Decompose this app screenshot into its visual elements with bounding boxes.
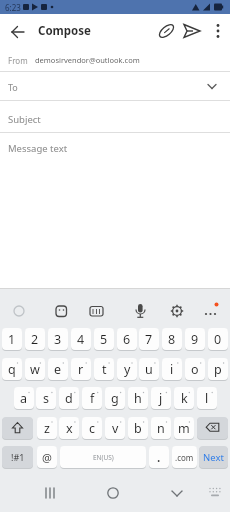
button[interactable]: Next	[199, 446, 228, 468]
button[interactable]: q	[2, 358, 22, 380]
button[interactable]: s	[36, 387, 56, 409]
button[interactable]	[157, 480, 197, 506]
staticText: 6	[123, 331, 131, 348]
button[interactable]: t	[94, 358, 114, 380]
button[interactable]: 2	[25, 328, 45, 350]
staticText: z	[44, 420, 50, 437]
staticText: m	[178, 420, 190, 437]
button[interactable]: e	[48, 358, 68, 380]
staticText: 3	[54, 331, 62, 348]
button[interactable]: v	[105, 417, 125, 439]
staticText: .com	[175, 452, 194, 463]
button[interactable]: i	[162, 358, 182, 380]
staticText: .	[157, 449, 161, 465]
button[interactable]	[6, 20, 30, 44]
button[interactable]	[93, 480, 133, 506]
button[interactable]: 8	[162, 328, 182, 350]
staticText: o	[191, 361, 199, 378]
button[interactable]: 7	[139, 328, 159, 350]
staticText: Message text	[8, 142, 68, 155]
staticText: q	[8, 361, 16, 378]
button[interactable]: w	[25, 358, 45, 380]
staticText: h	[134, 390, 142, 407]
staticText: 4	[77, 331, 85, 348]
staticText: n	[157, 420, 165, 437]
button[interactable]: 1	[2, 328, 22, 350]
button[interactable]: EN(US)	[60, 446, 146, 468]
staticText: demosirvendor@outlook.com	[35, 55, 140, 65]
button[interactable]: 3	[48, 328, 68, 350]
button[interactable]: h	[128, 387, 148, 409]
button[interactable]: @	[37, 446, 57, 468]
button[interactable]	[2, 417, 33, 439]
button[interactable]: .	[149, 446, 169, 468]
button[interactable]: .com	[172, 446, 197, 468]
button[interactable]: a	[14, 387, 34, 409]
button[interactable]: k	[174, 387, 194, 409]
staticText: b	[134, 420, 142, 437]
button[interactable]: n	[151, 417, 171, 439]
staticText: r	[78, 361, 84, 378]
staticText: 9	[191, 331, 199, 348]
button[interactable]: 0	[208, 328, 228, 350]
staticText: To	[8, 81, 18, 93]
staticText: f	[90, 390, 95, 407]
staticText: 0	[214, 331, 222, 348]
button[interactable]: !#1	[2, 446, 33, 468]
staticText: @	[42, 450, 52, 465]
button[interactable]: 5	[94, 328, 114, 350]
button[interactable]	[203, 480, 227, 506]
staticText: From	[8, 55, 28, 66]
button[interactable]	[180, 19, 204, 43]
button[interactable]: c	[82, 417, 102, 439]
button[interactable]: Message text	[0, 133, 230, 288]
button[interactable]: y	[117, 358, 137, 380]
button[interactable]: x	[59, 417, 79, 439]
staticText: EN(US)	[93, 453, 114, 462]
staticText: u	[145, 361, 153, 378]
staticText: j	[159, 390, 163, 407]
staticText: Compose	[38, 23, 91, 39]
staticText: 5	[100, 331, 108, 348]
button[interactable]: m	[174, 417, 194, 439]
staticText: i	[170, 361, 174, 378]
staticText: a	[20, 390, 28, 407]
staticText: l	[205, 390, 209, 407]
staticText: 1	[8, 331, 16, 348]
button[interactable]: l	[197, 387, 217, 409]
button[interactable]: r	[71, 358, 91, 380]
staticText: !#1	[11, 451, 25, 463]
staticText: e	[54, 361, 62, 378]
staticText: v	[112, 420, 119, 437]
staticText: c	[89, 420, 96, 437]
button[interactable]: u	[139, 358, 159, 380]
button[interactable]	[208, 19, 228, 43]
button[interactable]	[197, 417, 228, 439]
staticText: Next	[203, 451, 224, 464]
staticText: x	[66, 420, 73, 437]
button[interactable]: z	[37, 417, 57, 439]
button[interactable]: j	[151, 387, 171, 409]
staticText: Subject	[8, 113, 41, 126]
button[interactable]: 9	[185, 328, 205, 350]
button[interactable]: 4	[71, 328, 91, 350]
button[interactable]: Subject	[0, 101, 230, 132]
button[interactable]: To	[0, 72, 230, 100]
staticText: g	[111, 390, 119, 407]
button[interactable]: g	[105, 387, 125, 409]
button[interactable]: o	[185, 358, 205, 380]
button[interactable]: 6	[117, 328, 137, 350]
staticText: s	[43, 390, 49, 407]
button[interactable]	[155, 19, 178, 43]
staticText: 6:23	[5, 2, 21, 13]
staticText: d	[65, 390, 73, 407]
button[interactable]	[30, 480, 70, 506]
button[interactable]: p	[208, 358, 228, 380]
button[interactable]: d	[59, 387, 79, 409]
staticText: y	[124, 361, 131, 378]
button[interactable]: f	[82, 387, 102, 409]
button[interactable]: b	[128, 417, 148, 439]
staticText: k	[181, 390, 188, 407]
staticText: 2	[31, 331, 39, 348]
staticText: 7	[145, 331, 153, 348]
